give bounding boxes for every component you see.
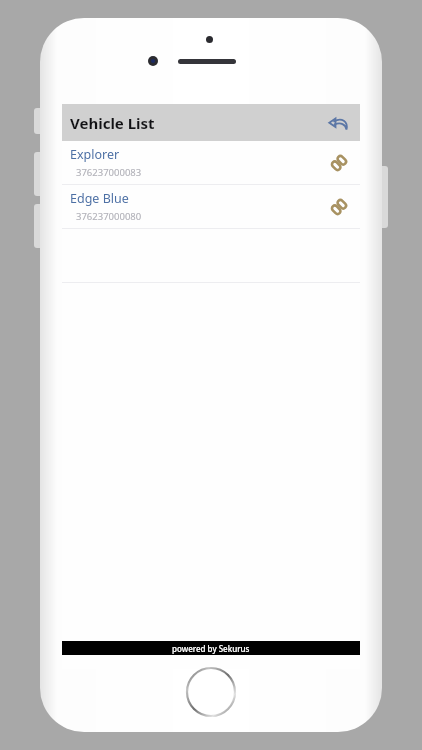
staticText: Edge Blue bbox=[70, 190, 129, 207]
button[interactable]: Volume up bbox=[34, 152, 41, 196]
button[interactable]: Volume down bbox=[34, 204, 41, 248]
staticText: powered by Sekurus bbox=[172, 643, 250, 654]
staticText: 376237000083 bbox=[76, 166, 142, 179]
button[interactable]: Edge Blue bbox=[62, 185, 360, 229]
button[interactable]: Back bbox=[324, 108, 354, 138]
staticText: Explorer bbox=[70, 146, 120, 163]
button[interactable]: Link vehicle bbox=[324, 148, 354, 178]
button[interactable]: Power bbox=[381, 166, 388, 228]
button[interactable]: Home bbox=[185, 666, 237, 718]
button[interactable]: Link vehicle bbox=[324, 192, 354, 222]
staticText: 376237000080 bbox=[76, 210, 142, 223]
button[interactable]: Silent switch bbox=[34, 108, 41, 134]
button[interactable]: Explorer bbox=[62, 141, 360, 185]
staticText: Vehicle List bbox=[70, 113, 155, 133]
